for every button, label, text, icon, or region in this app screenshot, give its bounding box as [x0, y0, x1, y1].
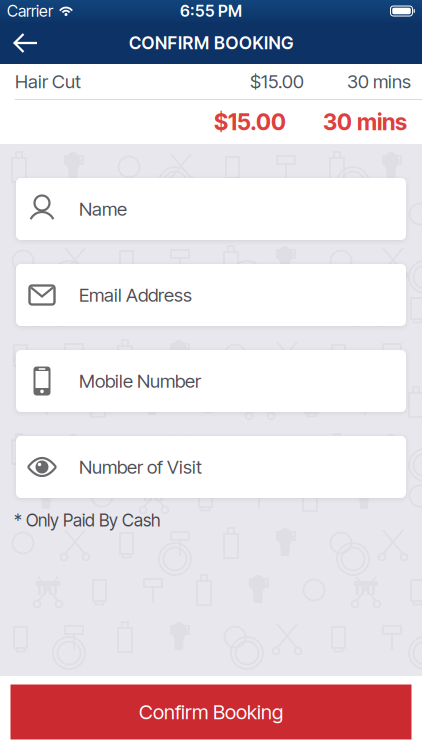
staticText: * Only Paid By Cash — [14, 510, 160, 530]
staticText: $15.00 — [250, 70, 304, 92]
staticText: Email Address — [79, 284, 192, 306]
staticText: 6:55 PM — [180, 2, 242, 20]
button[interactable]: Email Address — [16, 264, 406, 326]
button[interactable]: Mobile Number — [16, 350, 406, 412]
staticText: Mobile Number — [79, 370, 201, 392]
staticText: Carrier — [7, 2, 53, 20]
staticText: CONFIRM BOOKING — [129, 33, 293, 53]
staticText: 30 mins — [323, 109, 407, 135]
staticText: 30 mins — [347, 70, 411, 92]
button[interactable]: Name — [16, 178, 406, 240]
staticText: $15.00 — [214, 109, 286, 135]
button[interactable]: Number of Visit — [16, 436, 406, 498]
button[interactable]: Confirm Booking — [10, 684, 411, 739]
staticText: Confirm Booking — [139, 700, 283, 724]
staticText: Hair Cut — [15, 70, 81, 92]
staticText: Name — [79, 198, 127, 220]
staticText: Number of Visit — [79, 456, 202, 478]
button[interactable]: Back — [0, 32, 37, 54]
